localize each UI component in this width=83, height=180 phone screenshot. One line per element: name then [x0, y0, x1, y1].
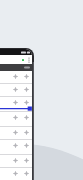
button[interactable]: Increase — [23, 99, 30, 106]
button[interactable]: Decrease — [0, 84, 32, 97]
button[interactable]: Sort — [23, 64, 30, 71]
button[interactable]: Decrease — [12, 170, 19, 177]
button[interactable]: Increase — [23, 129, 30, 136]
button[interactable]: Decrease — [12, 157, 19, 164]
button[interactable]: More options — [26, 55, 31, 64]
button[interactable]: Increase — [23, 157, 30, 164]
button[interactable]: Decrease — [0, 168, 32, 180]
button[interactable]: Decrease — [0, 155, 32, 168]
button[interactable]: Decrease — [0, 71, 32, 84]
button[interactable]: Increase — [23, 142, 30, 149]
button[interactable]: Decrease — [0, 112, 32, 127]
button[interactable]: Decrease — [12, 142, 19, 149]
button[interactable]: Decrease — [12, 114, 19, 121]
button[interactable]: Decrease — [12, 129, 19, 136]
button[interactable]: Increase — [23, 73, 30, 80]
button[interactable]: Decrease — [0, 140, 32, 155]
button[interactable]: Decrease — [12, 73, 19, 80]
button[interactable]: Decrease — [12, 99, 19, 106]
button[interactable]: Increase — [23, 114, 30, 121]
button[interactable]: Decrease — [0, 127, 32, 140]
button[interactable]: Increase — [23, 86, 30, 93]
button[interactable]: Decrease — [12, 86, 19, 93]
button[interactable]: Increase — [23, 170, 30, 177]
button[interactable]: Decrease — [0, 97, 32, 112]
